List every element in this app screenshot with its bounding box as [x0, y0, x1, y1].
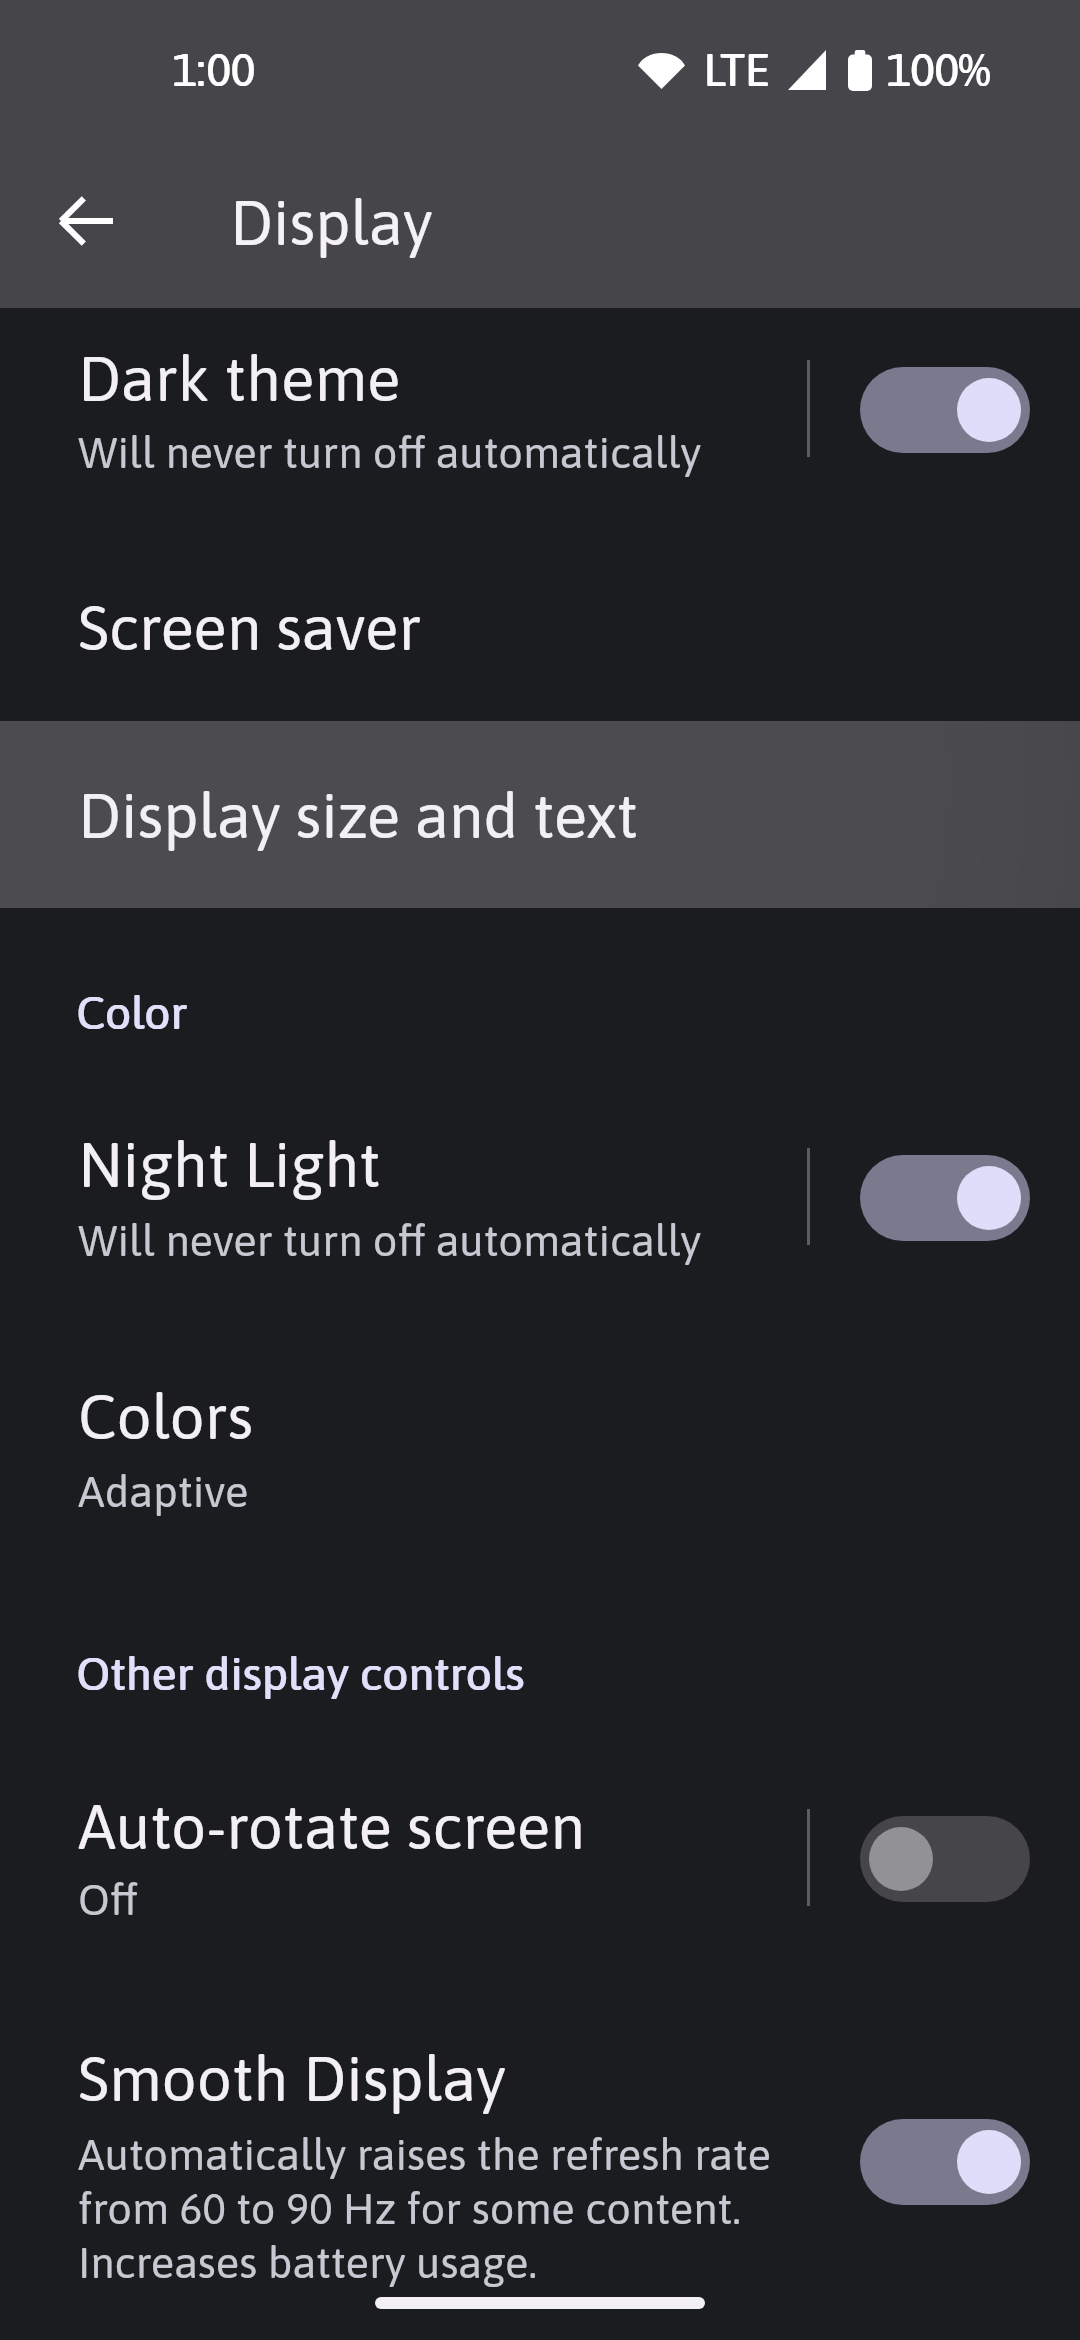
staticText: 1:00: [173, 44, 256, 96]
staticText: 100%: [886, 44, 990, 96]
staticText: 100%: [887, 44, 991, 96]
staticText: Screen saver: [78, 592, 422, 663]
staticText: 1:00: [172, 44, 255, 96]
staticText: Automatically raises the refresh rate fr…: [78, 2129, 771, 2287]
button[interactable]: [0, 721, 1080, 908]
staticText: Dark theme: [78, 343, 401, 414]
button[interactable]: [0, 1768, 1080, 1948]
other: Wi-Fi: [638, 50, 685, 89]
button[interactable]: Switch on: [860, 367, 1030, 453]
staticText: Other display controls: [76, 1647, 525, 1700]
staticText: Off: [78, 1874, 138, 1924]
staticText: LTE: [704, 44, 771, 96]
button[interactable]: [0, 2020, 1080, 2290]
button[interactable]: Switch on: [860, 1155, 1030, 1241]
staticText: Adaptive: [78, 1466, 249, 1516]
staticText: Night Light: [78, 1129, 381, 1200]
button[interactable]: Back: [38, 173, 134, 269]
staticText: Auto-rotate screen: [78, 1791, 585, 1862]
staticText: Color: [76, 986, 187, 1039]
other: Mobile signal: [788, 50, 826, 90]
button[interactable]: [0, 520, 1080, 710]
staticText: Color: [77, 986, 188, 1039]
staticText: Will never turn off automatically: [78, 1215, 702, 1265]
button[interactable]: Switch off: [860, 1816, 1030, 1902]
staticText: Will never turn off automatically: [78, 427, 702, 477]
staticText: Smooth Display: [78, 2043, 506, 2114]
staticText: Other display controls: [77, 1647, 526, 1700]
other: Battery full: [848, 50, 872, 91]
button[interactable]: Switch on: [860, 2119, 1030, 2205]
button[interactable]: [0, 320, 1080, 500]
staticText: Colors: [78, 1381, 254, 1452]
button[interactable]: [0, 1340, 1080, 1530]
staticText: Display size and text: [78, 780, 638, 851]
staticText: Display: [230, 187, 433, 258]
button[interactable]: [0, 1106, 1080, 1286]
staticText: LTE: [703, 44, 770, 96]
